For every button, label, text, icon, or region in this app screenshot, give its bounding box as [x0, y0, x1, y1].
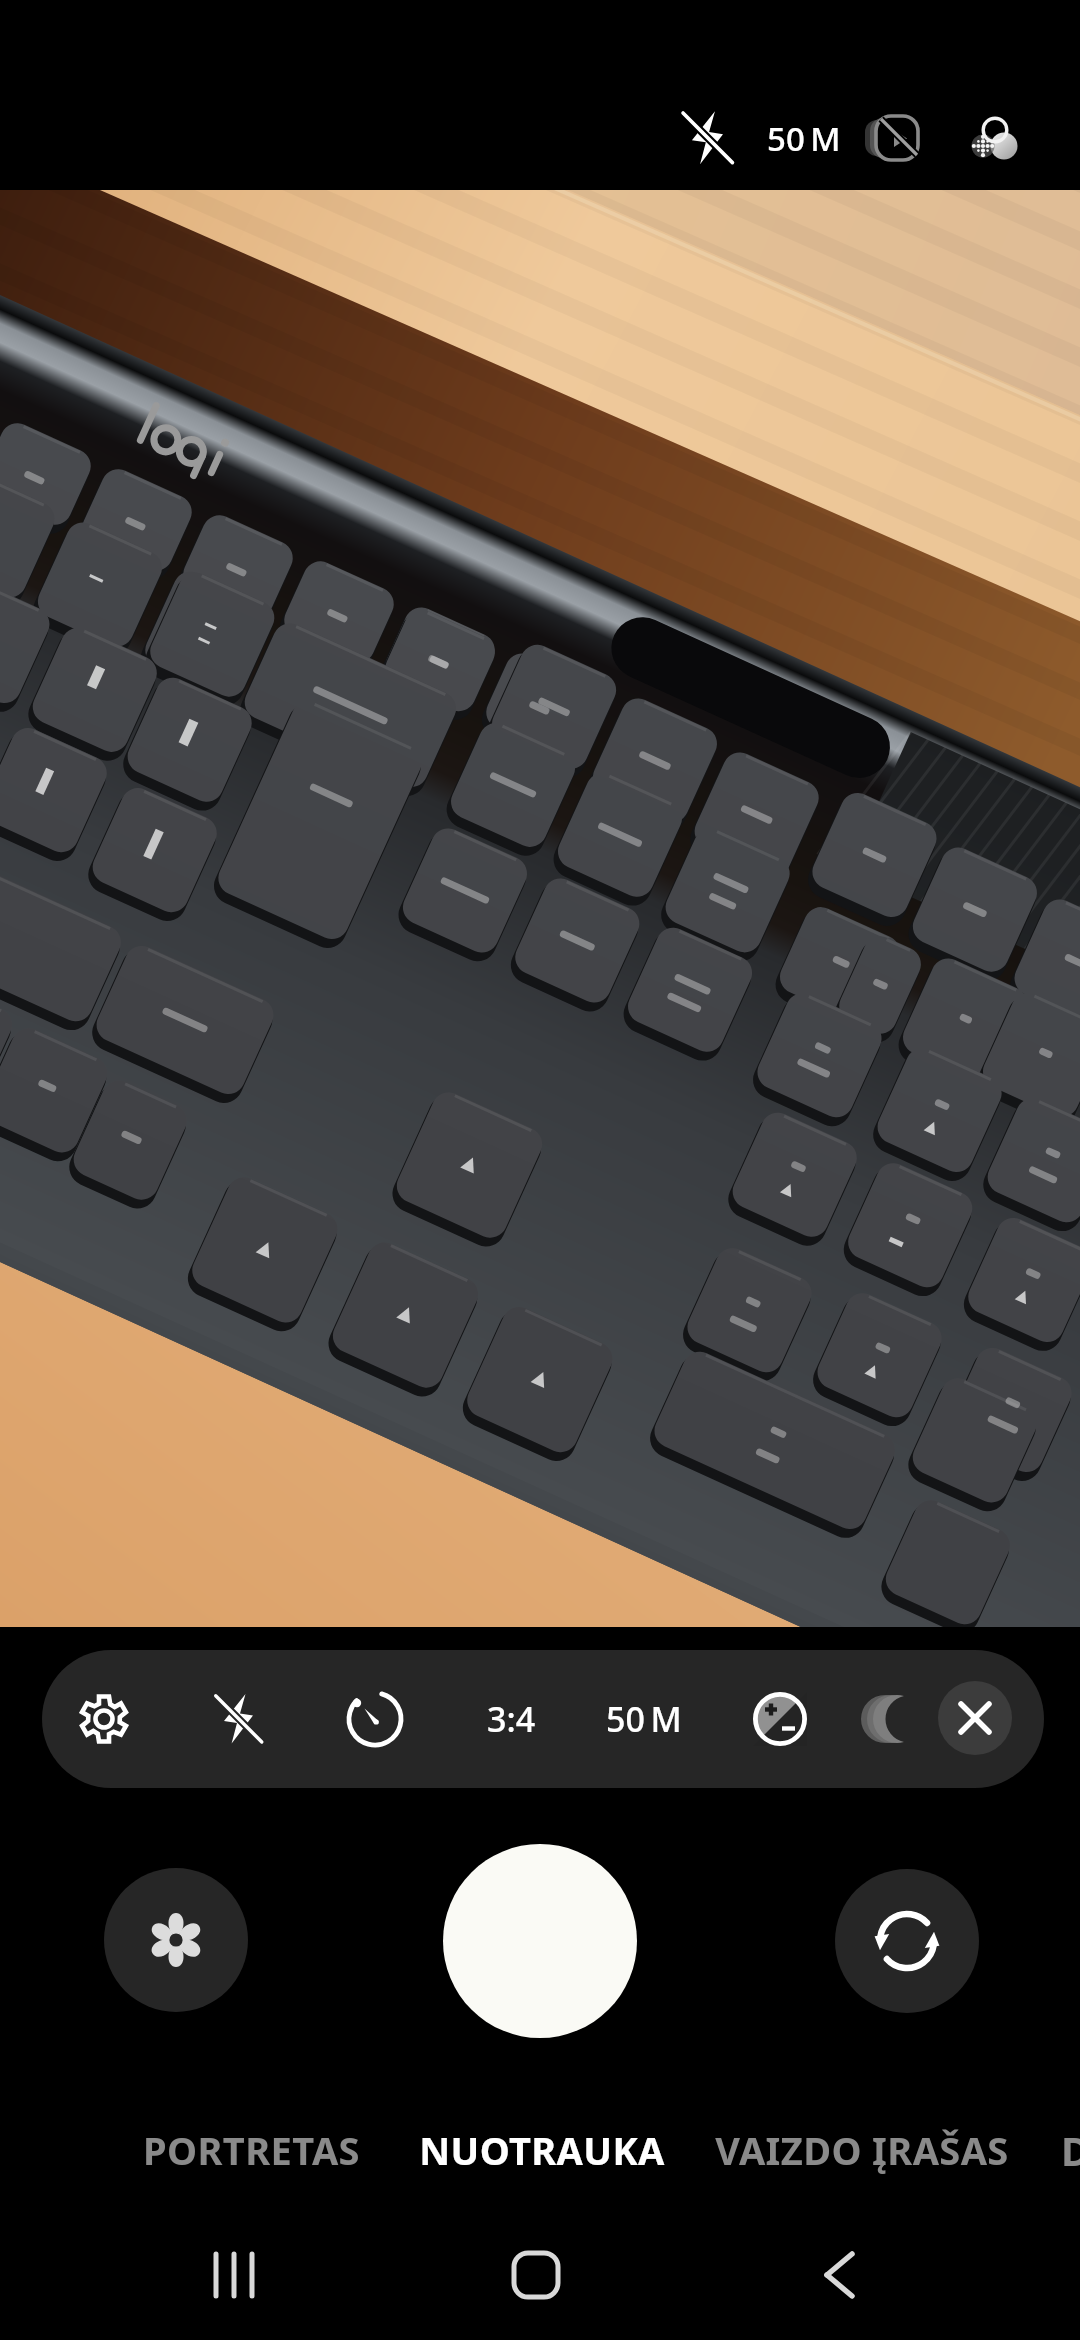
button[interactable]: Timer [335, 1679, 415, 1759]
staticText: D [1061, 2123, 1080, 2177]
button[interactable]: PORTRETAS [71, 2118, 431, 2182]
staticText: NUOTRAUKA [419, 2124, 665, 2176]
button[interactable]: Night mode [859, 1681, 935, 1757]
button[interactable]: Take picture [443, 1844, 637, 2038]
button[interactable]: Back [780, 2215, 900, 2335]
button[interactable]: Settings [62, 1677, 146, 1761]
button[interactable]: 50 M [734, 98, 874, 178]
button[interactable]: Close [938, 1681, 1012, 1755]
staticText: 50 M [767, 116, 841, 161]
button[interactable]: Filters [948, 92, 1040, 184]
staticText: 50 M [606, 1696, 682, 1742]
button[interactable]: Home [476, 2215, 596, 2335]
button[interactable]: VAIZDO ĮRAŠAS [682, 2118, 1042, 2182]
button[interactable]: Motion photo off [854, 92, 946, 184]
button[interactable]: 50 M [574, 1679, 714, 1759]
button[interactable]: D [1056, 2118, 1080, 2182]
button[interactable]: Recents [174, 2215, 294, 2335]
button[interactable]: Exposure [742, 1681, 818, 1757]
button[interactable]: Flash [197, 1677, 281, 1761]
button[interactable]: Switch camera [835, 1869, 979, 2013]
button[interactable]: 3:4 [441, 1679, 581, 1759]
staticText: VAIZDO ĮRAŠAS [715, 2124, 1009, 2176]
button[interactable]: Effects [104, 1868, 248, 2012]
staticText: PORTRETAS [143, 2124, 360, 2176]
button[interactable]: NUOTRAUKA [362, 2118, 722, 2182]
staticText: 3:4 [487, 1696, 536, 1742]
button[interactable]: Flash off [663, 93, 753, 183]
